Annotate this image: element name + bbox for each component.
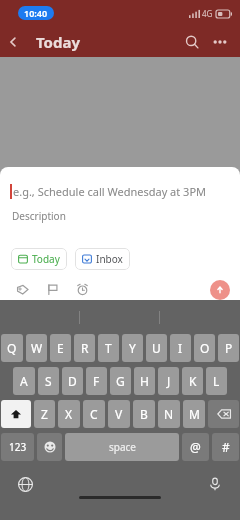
button[interactable]: H — [134, 367, 155, 395]
staticText: I — [178, 340, 183, 356]
button[interactable]: Emoji — [37, 433, 62, 461]
button[interactable]: N — [158, 400, 180, 428]
button[interactable]: G — [110, 367, 131, 395]
button[interactable]: Backspace — [208, 400, 239, 428]
button[interactable]: Reminder — [71, 279, 93, 300]
button[interactable]: M — [183, 400, 205, 428]
button[interactable]: space — [65, 433, 179, 461]
button[interactable]: E — [50, 334, 71, 362]
button[interactable]: Inbox — [75, 248, 130, 270]
staticText: X — [65, 406, 73, 422]
button[interactable]: S — [38, 367, 59, 395]
staticText: W — [31, 340, 43, 356]
button[interactable]: @ — [182, 433, 209, 461]
button[interactable]: I — [170, 334, 191, 362]
staticText: R — [81, 340, 89, 356]
staticText: M — [189, 406, 200, 422]
staticText: K — [189, 373, 197, 389]
button[interactable]: L — [206, 367, 227, 395]
staticText: E — [57, 340, 64, 356]
button[interactable]: J — [158, 367, 179, 395]
button[interactable]: Today — [11, 248, 67, 270]
staticText: C — [90, 406, 98, 422]
button[interactable]: Add task — [210, 280, 230, 300]
button[interactable]: Z — [34, 400, 55, 428]
staticText: V — [115, 406, 123, 422]
staticText: H — [140, 373, 149, 389]
staticText: Today — [32, 252, 60, 266]
staticText: 4G — [202, 8, 213, 19]
staticText: D — [68, 373, 77, 389]
staticText: e.g., Schedule call Wednesday at 3PM — [13, 184, 207, 199]
button[interactable]: Labels — [11, 279, 33, 300]
button[interactable]: P — [218, 334, 239, 362]
staticText: F — [93, 373, 100, 389]
staticText: N — [164, 406, 174, 422]
button[interactable]: R — [74, 334, 95, 362]
staticText: space — [109, 440, 136, 454]
staticText: Today — [36, 32, 81, 52]
button[interactable]: Shift — [1, 400, 31, 428]
button[interactable]: V — [108, 400, 130, 428]
staticText: @ — [190, 439, 201, 455]
staticText: J — [167, 373, 171, 389]
staticText: U — [152, 340, 161, 356]
button[interactable]: Search — [178, 28, 206, 56]
button[interactable]: Q — [1, 334, 23, 362]
staticText: # — [222, 439, 230, 455]
button[interactable]: Change keyboard — [14, 473, 36, 495]
button[interactable]: T — [98, 334, 119, 362]
staticText: B — [140, 406, 148, 422]
staticText: Z — [41, 406, 48, 422]
button[interactable]: K — [182, 367, 203, 395]
staticText: 10:40 — [24, 7, 48, 19]
button[interactable]: F — [86, 367, 107, 395]
staticText: Inbox — [96, 252, 123, 266]
button[interactable]: More options — [206, 28, 234, 56]
staticText: O — [200, 340, 210, 356]
button[interactable]: U — [146, 334, 167, 362]
staticText: P — [225, 340, 233, 356]
staticText: Y — [129, 340, 136, 356]
button[interactable]: B — [133, 400, 155, 428]
staticText: A — [20, 373, 28, 389]
button[interactable]: # — [212, 433, 239, 461]
button[interactable]: Voice input — [204, 473, 226, 495]
button[interactable]: O — [194, 334, 215, 362]
staticText: G — [116, 373, 125, 389]
staticText: 123 — [9, 440, 27, 454]
button[interactable]: C — [83, 400, 105, 428]
button[interactable]: W — [26, 334, 47, 362]
staticText: L — [213, 373, 220, 389]
staticText: T — [105, 340, 112, 356]
staticText: Q — [7, 340, 17, 356]
button[interactable]: D — [62, 367, 83, 395]
staticText: Description — [12, 209, 66, 223]
button[interactable]: Back — [0, 29, 26, 55]
staticText: S — [45, 373, 52, 389]
button[interactable]: Priority — [41, 279, 63, 300]
button[interactable]: 123 — [1, 433, 34, 461]
button[interactable]: Y — [122, 334, 143, 362]
button[interactable]: A — [13, 367, 35, 395]
button[interactable]: X — [58, 400, 80, 428]
